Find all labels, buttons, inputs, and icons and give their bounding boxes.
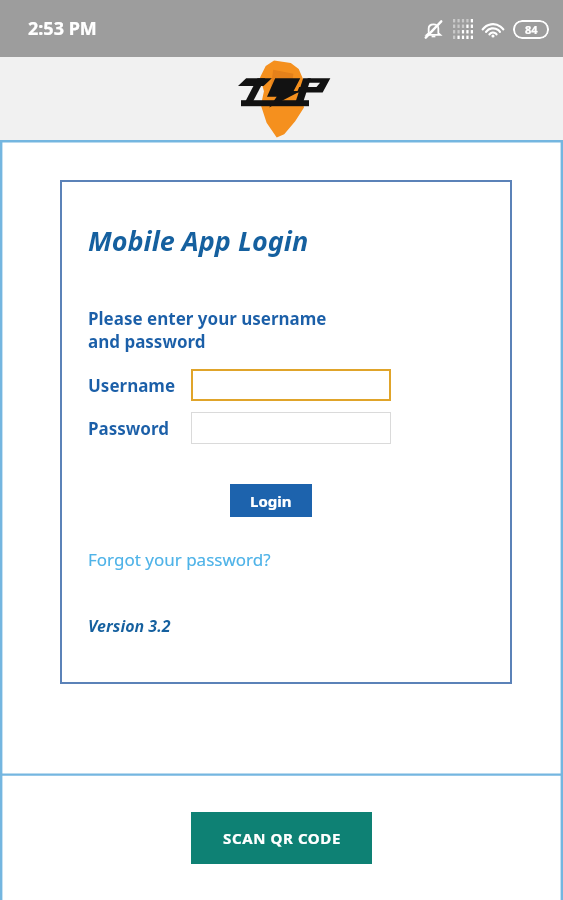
staticText: Mobile App Login [88,222,309,259]
button[interactable]: Password input field [191,412,391,444]
staticText: SCAN QR CODE [223,828,341,848]
staticText: Username [88,374,176,397]
button[interactable]: SCAN QR CODE [191,812,372,864]
button[interactable]: Username input field [191,369,391,401]
staticText: 2:53 PM [28,16,97,41]
staticText: 84 [525,22,538,37]
staticText: Please enter your username and password [88,307,327,353]
staticText: Login [250,491,292,511]
button[interactable]: Forgot your password? [88,548,271,571]
button[interactable]: Login [230,484,312,517]
staticText: Version 3.2 [88,615,171,637]
staticText: Password [88,417,169,440]
